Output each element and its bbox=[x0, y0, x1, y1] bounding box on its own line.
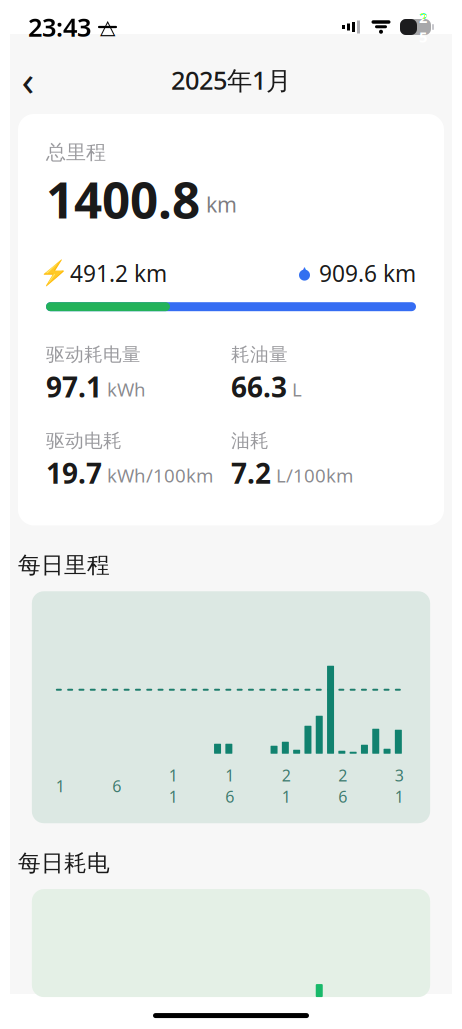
staticText: 每日耗电 bbox=[18, 849, 110, 877]
staticText: 油耗 bbox=[231, 429, 269, 452]
staticText: ⚡ bbox=[39, 259, 69, 287]
staticText: 31 bbox=[395, 765, 404, 807]
staticText: 25 bbox=[419, 7, 427, 46]
staticText: 7.2 bbox=[231, 454, 271, 491]
staticText: 1 bbox=[56, 775, 65, 797]
staticText: 总里程 bbox=[46, 140, 106, 165]
button[interactable]: Back bbox=[6, 58, 50, 102]
staticText: 11 bbox=[169, 765, 178, 807]
staticText: 19.7 bbox=[46, 454, 102, 491]
staticText: L/100km bbox=[271, 463, 353, 488]
staticText: 耗油量 bbox=[231, 343, 288, 366]
staticText: 491.2 km bbox=[70, 258, 167, 288]
staticText: kWh/100km bbox=[102, 463, 213, 488]
staticText: kWh bbox=[102, 377, 146, 402]
staticText: L bbox=[287, 377, 302, 402]
staticText: 2025年1月 bbox=[171, 63, 291, 97]
staticText: 909.6 km bbox=[319, 258, 416, 288]
staticText: 驱动耗电量 bbox=[46, 343, 141, 366]
staticText: ‹ bbox=[21, 53, 34, 107]
staticText: 21 bbox=[282, 765, 291, 807]
staticText: 66.3 bbox=[231, 368, 287, 405]
staticText: 每日里程 bbox=[18, 551, 110, 579]
staticText: 驱动电耗 bbox=[46, 429, 122, 452]
staticText: 1400.8 bbox=[46, 167, 200, 232]
staticText: △ bbox=[100, 16, 115, 38]
staticText: 23:43 bbox=[28, 10, 91, 44]
staticText: 6 bbox=[112, 775, 121, 797]
staticText: ▴ bbox=[300, 260, 309, 279]
staticText: km bbox=[200, 190, 237, 218]
staticText: 97.1 bbox=[46, 368, 102, 405]
staticText: 26 bbox=[338, 765, 347, 807]
staticText: 16 bbox=[225, 765, 234, 807]
